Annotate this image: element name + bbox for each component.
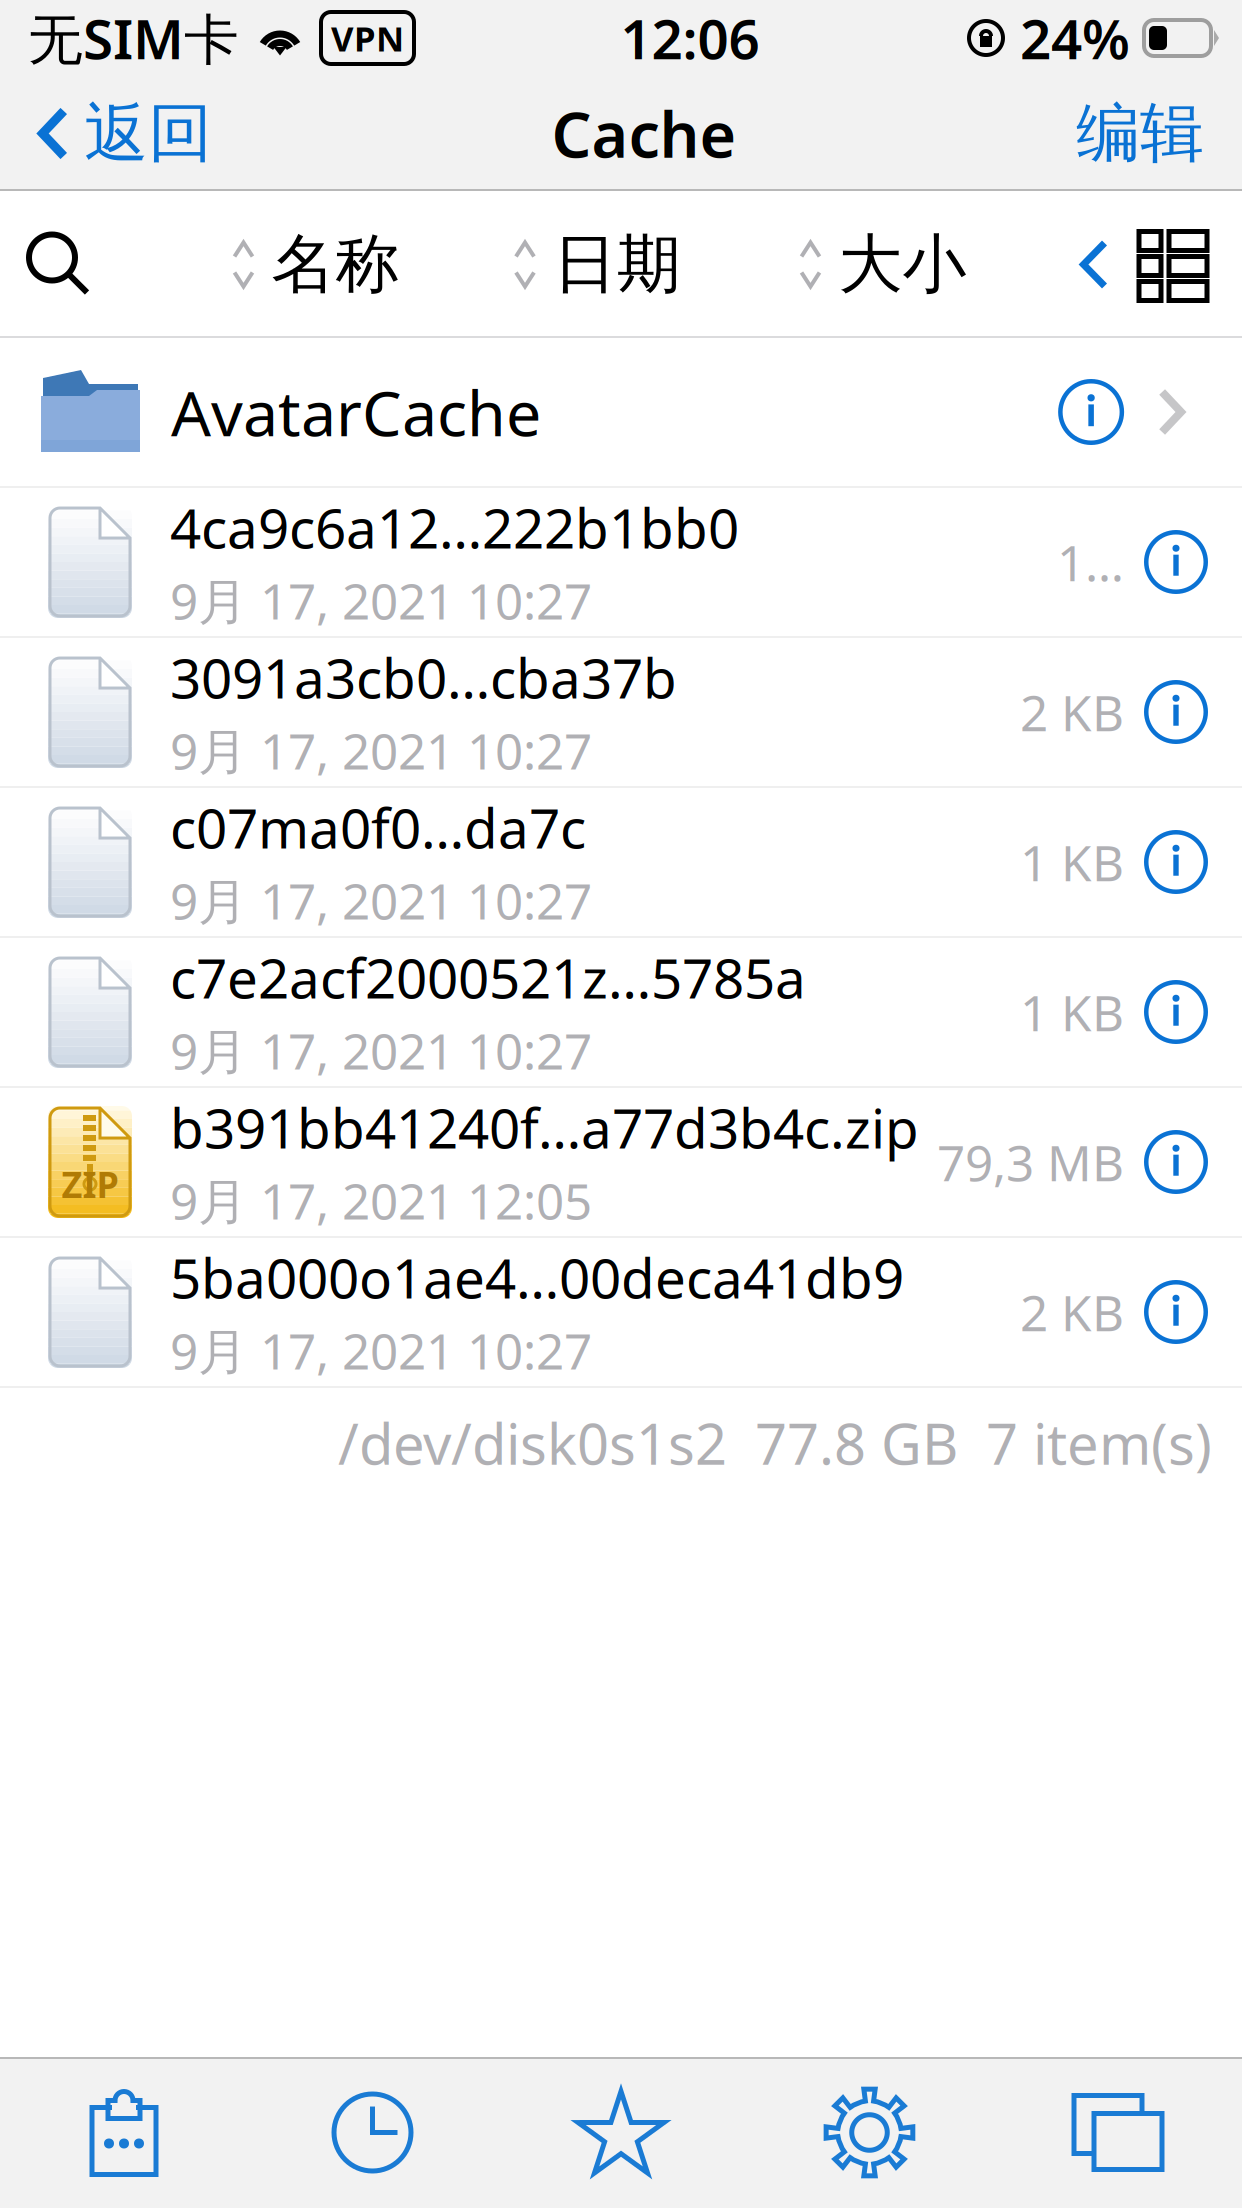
button[interactable]: ZIP (0, 1088, 1242, 1238)
button[interactable]: Recents (248, 2057, 497, 2208)
staticText: 9月 17, 2021 10:27 (170, 1017, 592, 1083)
button[interactable]: 4ca9c6a12…222b1bb0 (0, 488, 1242, 638)
staticText: 4ca9c6a12…222b1bb0 (170, 491, 739, 563)
button[interactable]: Tabs (994, 2057, 1242, 2208)
staticText: Cache (552, 92, 737, 175)
staticText: AvatarCache (171, 370, 541, 454)
button[interactable]: 3091a3cb0…cba37b (0, 638, 1242, 788)
staticText: 名称 (271, 225, 399, 304)
button[interactable]: Layout (1108, 228, 1242, 300)
staticText: 9月 17, 2021 10:27 (170, 1317, 592, 1383)
staticText: ZIP (61, 1160, 118, 1208)
button[interactable]: 大小 (798, 225, 966, 304)
staticText: 12:06 (620, 2, 759, 74)
staticText: 3091a3cb0…cba37b (170, 641, 677, 713)
staticText: 1… (1057, 529, 1124, 595)
staticText: 5ba000o1ae4…00deca41db9 (170, 1241, 904, 1313)
staticText: 77.8 GB (755, 1406, 958, 1480)
staticText: 9月 17, 2021 12:05 (170, 1167, 592, 1233)
staticText: 9月 17, 2021 10:27 (170, 867, 592, 933)
staticText: 编辑 (1076, 94, 1204, 173)
staticText: c07ma0f0…da7c (170, 791, 586, 863)
staticText: 无SIM卡 (28, 2, 239, 74)
staticText: 大小 (838, 225, 966, 304)
staticText: 2 KB (1020, 679, 1124, 745)
button[interactable]: Settings (745, 2057, 994, 2208)
staticText: 9月 17, 2021 10:27 (170, 717, 592, 783)
staticText: 24% (1020, 2, 1130, 74)
staticText: 79,3 MB (937, 1129, 1124, 1195)
button[interactable]: 编辑 (1076, 76, 1242, 191)
button[interactable]: 5ba000o1ae4…00deca41db9 (0, 1238, 1242, 1388)
button[interactable]: Clipboard (0, 2057, 248, 2208)
staticText: 2 KB (1020, 1279, 1124, 1345)
button[interactable]: Collapse (1080, 239, 1108, 289)
staticText: 日期 (553, 225, 681, 304)
staticText: 返回 (84, 94, 212, 173)
staticText: VPN (331, 15, 404, 61)
button[interactable]: 日期 (513, 225, 681, 304)
button[interactable]: Favorites (497, 2057, 745, 2208)
button[interactable]: AvatarCache (0, 338, 1242, 488)
staticText: c7e2acf2000521z…5785a (170, 941, 806, 1013)
staticText: 1 KB (1020, 979, 1124, 1045)
staticText: 9月 17, 2021 10:27 (170, 567, 592, 633)
staticText: 7 item(s) (986, 1406, 1212, 1480)
button[interactable]: Search (0, 231, 118, 297)
button[interactable]: c07ma0f0…da7c (0, 788, 1242, 938)
button[interactable]: 返回 (0, 76, 212, 191)
button[interactable]: 名称 (231, 225, 399, 304)
button[interactable]: c7e2acf2000521z…5785a (0, 938, 1242, 1088)
staticText: 1 KB (1020, 829, 1124, 895)
staticText: b391bb41240f…a77d3b4c.zip (170, 1091, 919, 1163)
staticText: /dev/disk0s1s2 (338, 1406, 727, 1480)
